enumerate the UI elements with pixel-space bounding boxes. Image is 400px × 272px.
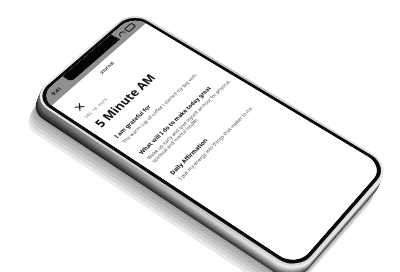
button[interactable]: Close bbox=[70, 100, 89, 114]
staticText: 9:41 bbox=[49, 86, 64, 97]
staticText: I am grateful for bbox=[112, 103, 152, 139]
staticText: Journal bbox=[98, 60, 115, 74]
staticText: What will I do to make today great bbox=[136, 84, 213, 155]
staticText: Daily Affirmation bbox=[167, 136, 209, 176]
staticText: I put my energy into things that matter … bbox=[176, 105, 255, 181]
staticText: The warm cup of coffee I started my day … bbox=[120, 71, 199, 144]
staticText: DEC 18, 2023 bbox=[83, 97, 109, 119]
staticText: Wake up early and give myself an hour fo… bbox=[145, 78, 238, 164]
staticText: 5 Minute AM bbox=[90, 71, 159, 130]
